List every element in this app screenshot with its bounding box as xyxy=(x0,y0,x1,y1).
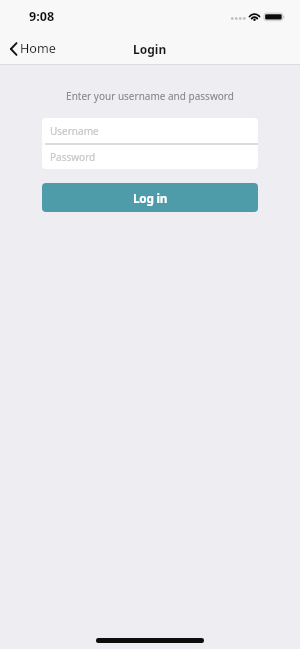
staticText: 9:08 xyxy=(29,8,55,25)
staticText: Home xyxy=(20,40,56,57)
button[interactable]: Back xyxy=(0,36,64,61)
staticText: Username xyxy=(50,124,99,138)
staticText: Enter your username and password xyxy=(0,89,300,103)
button[interactable]: Password xyxy=(42,145,258,169)
staticText: Login xyxy=(133,41,167,57)
other: Back xyxy=(10,42,17,56)
staticText: Log in xyxy=(133,190,168,206)
staticText: Password xyxy=(50,150,96,164)
button[interactable]: Log in xyxy=(42,183,258,212)
button[interactable]: Username xyxy=(42,118,258,143)
